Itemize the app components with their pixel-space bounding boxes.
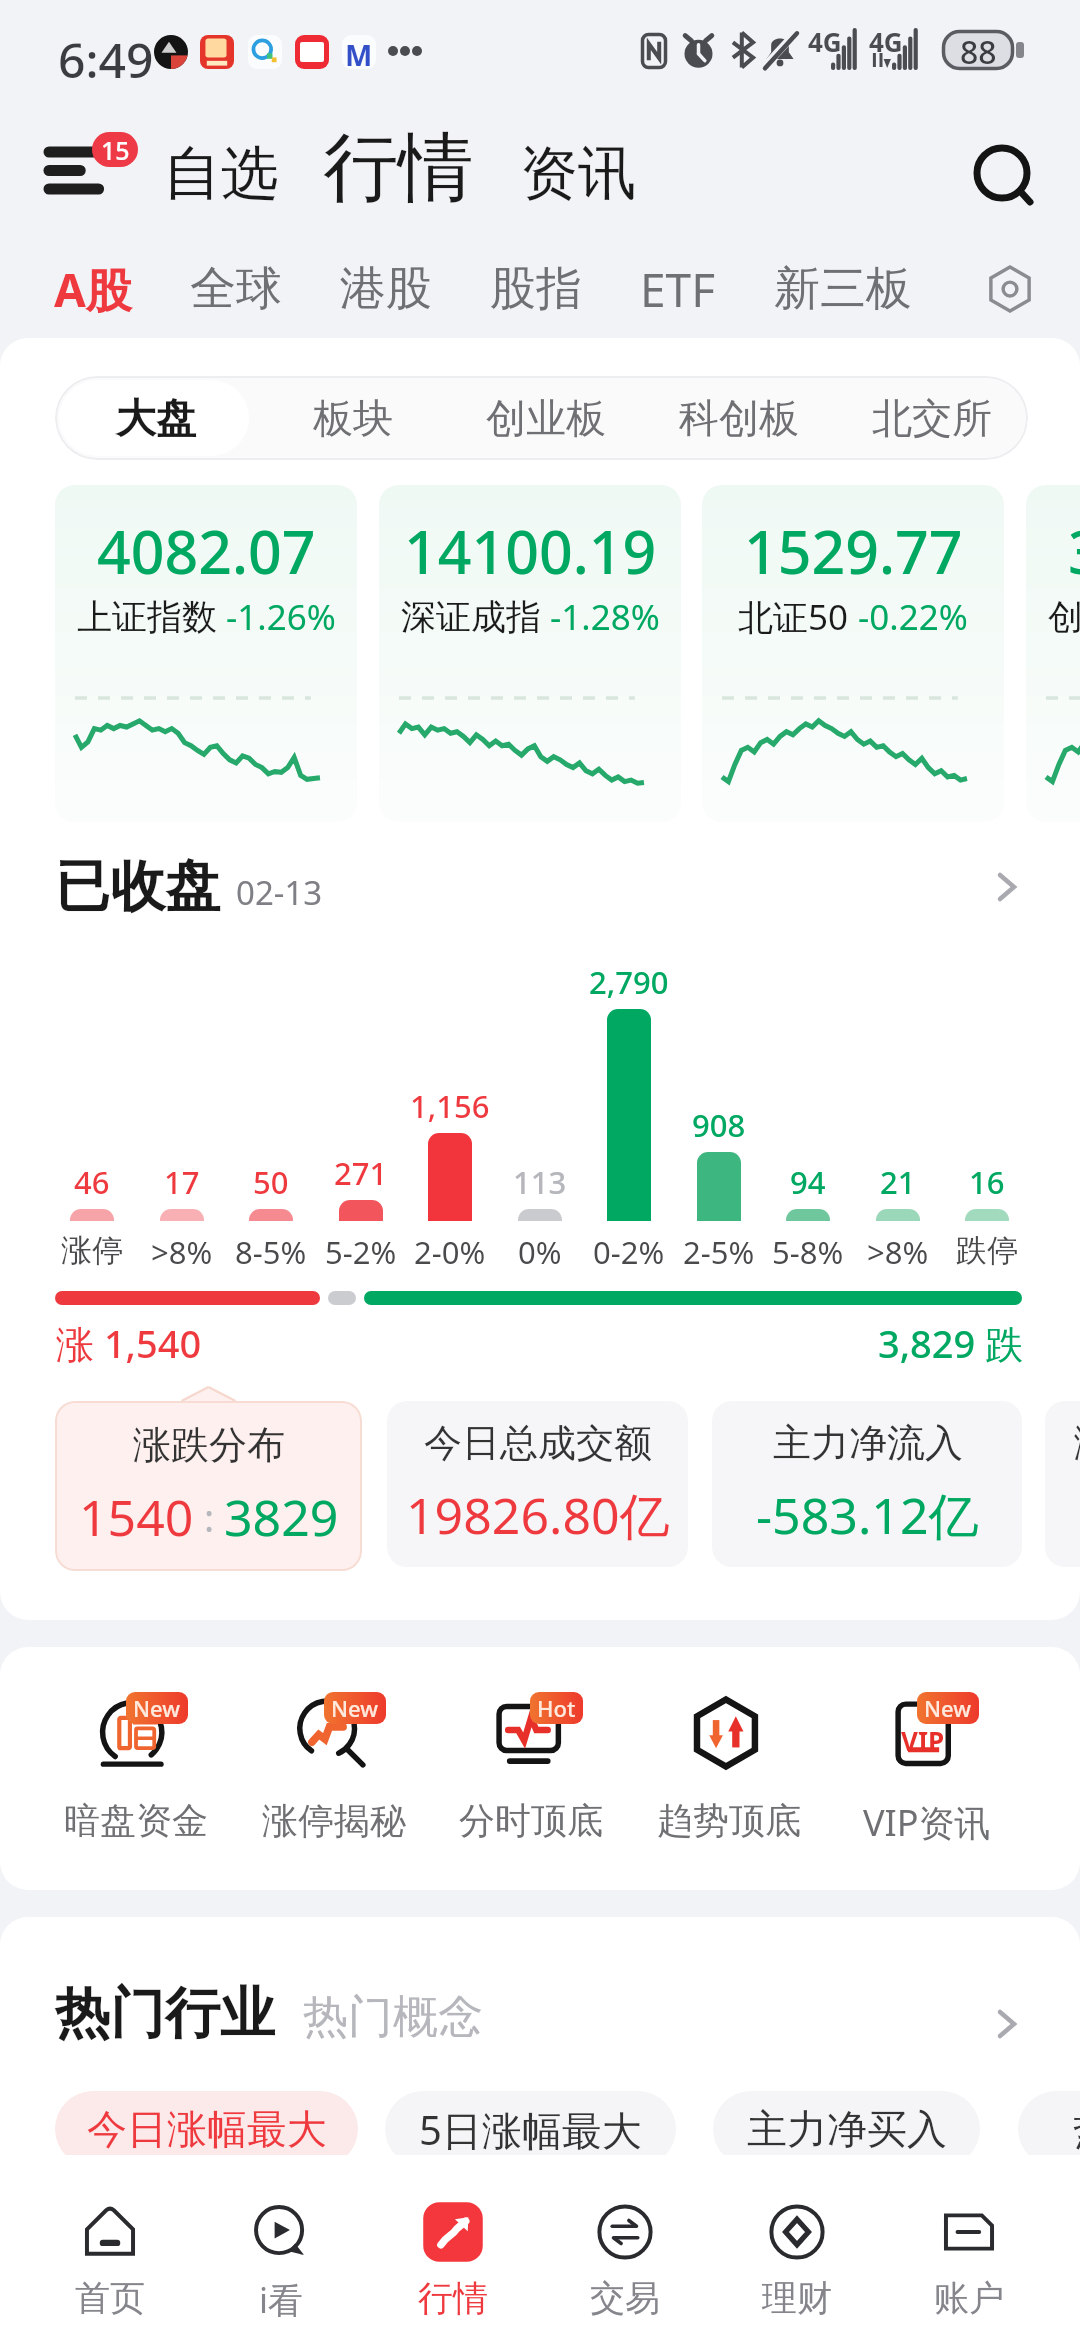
staticText: 涨跌分布: [133, 1421, 285, 1469]
staticText: 北证50: [738, 593, 849, 641]
staticText: 4G: [869, 24, 903, 59]
staticText: 已收盘: [55, 852, 220, 921]
staticText: 上证指数: [77, 595, 217, 639]
button[interactable]: More industries: [982, 2000, 1030, 2048]
staticText: 北交所: [872, 393, 992, 443]
staticText: 自选: [163, 137, 279, 210]
button[interactable]: 理财: [711, 2200, 883, 2340]
button[interactable]: Search: [963, 133, 1049, 219]
button[interactable]: 1529.77: [702, 485, 1004, 822]
button[interactable]: 主力净流入: [712, 1401, 1022, 1567]
staticText: 资讯: [520, 137, 636, 210]
staticText: 5-2%: [325, 1231, 397, 1273]
button[interactable]: 今日总成交额: [387, 1401, 688, 1567]
button[interactable]: 今日涨幅最大: [55, 2091, 358, 2167]
button[interactable]: 股指: [490, 248, 582, 330]
staticText: New: [331, 1693, 379, 1723]
button[interactable]: 3035.45: [1026, 485, 1080, 822]
button[interactable]: New: [236, 1695, 432, 1843]
button[interactable]: More: [982, 863, 1030, 911]
staticText: 17: [164, 1161, 200, 1203]
staticText: -1.26%: [226, 593, 336, 641]
staticText: -1.28%: [550, 593, 660, 641]
staticText: 6:49: [58, 27, 154, 92]
staticText: 首页: [75, 2276, 145, 2320]
staticText: 0-2%: [593, 1231, 665, 1273]
staticText: 0%: [518, 1231, 562, 1273]
button[interactable]: 资讯: [515, 125, 641, 222]
staticText: 2,790: [589, 961, 669, 1003]
staticText: 3035.45: [1068, 511, 1080, 591]
button[interactable]: Settings: [975, 254, 1045, 324]
button[interactable]: 科创板: [642, 376, 835, 460]
button[interactable]: 大盘: [55, 376, 256, 460]
button[interactable]: 交易: [539, 2200, 711, 2340]
button[interactable]: 涨跌家数: [1045, 1401, 1080, 1567]
button[interactable]: 港股: [340, 248, 432, 330]
button[interactable]: 首页: [24, 2200, 195, 2340]
staticText: >8%: [151, 1231, 213, 1273]
button[interactable]: 板块: [256, 376, 449, 460]
staticText: 8-5%: [235, 1231, 307, 1273]
staticText: 02-13: [236, 870, 323, 915]
staticText: 主力净买入: [747, 2104, 947, 2154]
staticText: 4G: [808, 24, 842, 59]
staticText: 1540: [79, 1483, 194, 1551]
button[interactable]: 热门行业: [55, 1979, 275, 2048]
staticText: A股: [54, 258, 132, 321]
staticText: 涨停揭秘: [262, 1798, 406, 1843]
staticText: 涨跌家数: [1074, 1419, 1080, 1467]
staticText: 今日涨幅最大: [87, 2104, 327, 2154]
button[interactable]: 涨跌分布: [55, 1401, 362, 1571]
staticText: 5-8%: [772, 1231, 844, 1273]
button[interactable]: 热门概念: [303, 1989, 483, 2048]
button[interactable]: 账户: [883, 2200, 1055, 2340]
button[interactable]: 行情: [318, 113, 478, 223]
button[interactable]: 14100.19: [379, 485, 681, 822]
staticText: :: [194, 1491, 224, 1543]
staticText: 21: [880, 1161, 916, 1203]
button[interactable]: 行情: [367, 2200, 539, 2340]
staticText: 行情: [323, 121, 473, 215]
staticText: 主力净流入: [773, 1419, 963, 1467]
staticText: 3829: [224, 1483, 339, 1551]
staticText: 交易: [590, 2276, 660, 2320]
button[interactable]: A股: [54, 246, 132, 333]
staticText: 2-0%: [414, 1231, 486, 1273]
staticText: 大盘: [116, 393, 196, 443]
button[interactable]: 已收盘: [55, 852, 323, 921]
button[interactable]: i看: [195, 2200, 367, 2340]
button[interactable]: 自选: [158, 125, 284, 222]
staticText: 4082.07: [97, 511, 316, 591]
staticText: 板块: [313, 393, 393, 443]
button[interactable]: ETF: [640, 246, 716, 333]
staticText: 理财: [762, 2276, 832, 2320]
staticText: 1529.77: [744, 511, 963, 591]
button[interactable]: New: [38, 1695, 234, 1843]
button[interactable]: Hot: [433, 1695, 629, 1843]
button[interactable]: 主力净买入: [713, 2091, 980, 2167]
staticText: 新三板: [774, 260, 912, 318]
button[interactable]: 新三板: [774, 248, 912, 330]
button[interactable]: Menu: [40, 136, 140, 206]
button[interactable]: 全球: [190, 248, 282, 330]
staticText: 全球: [190, 260, 282, 318]
staticText: i看: [259, 2276, 304, 2324]
staticText: 热力榜: [1073, 2104, 1080, 2154]
staticText: 271: [334, 1152, 388, 1194]
button[interactable]: 北交所: [835, 376, 1028, 460]
button[interactable]: 4082.07: [55, 485, 357, 822]
button[interactable]: VIP: [829, 1695, 1025, 1847]
staticText: 涨 1,540: [56, 1317, 202, 1369]
button[interactable]: 热力榜: [1018, 2091, 1080, 2167]
staticText: 涨停: [61, 1231, 123, 1270]
staticText: 跌停: [956, 1231, 1018, 1270]
button[interactable]: 趋势顶底: [631, 1695, 827, 1843]
button[interactable]: 5日涨幅最大: [385, 2091, 676, 2167]
staticText: ETF: [640, 258, 716, 321]
button[interactable]: 创业板: [449, 376, 642, 460]
staticText: 14100.19: [404, 511, 657, 591]
staticText: 股指: [490, 260, 582, 318]
staticText: 热门概念: [303, 1989, 483, 2046]
